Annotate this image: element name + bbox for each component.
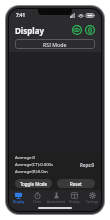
- staticText: Settings: [86, 200, 99, 204]
- button[interactable]: Toggle Mode: [15, 179, 52, 188]
- button[interactable]: Sensor battery: [85, 25, 95, 35]
- staticText: Toggle Mode: [20, 181, 48, 187]
- staticText: Display: [15, 25, 45, 36]
- staticText: Reps:0: [80, 162, 95, 168]
- button[interactable]: History: [65, 190, 83, 205]
- button[interactable]: RSI Mode: [15, 39, 95, 49]
- button[interactable]: Reset: [57, 179, 95, 188]
- staticText: Display: [13, 200, 25, 204]
- staticText: History: [69, 200, 80, 204]
- staticText: Average(R):0.0m: [15, 169, 48, 175]
- button[interactable]: Display: [9, 190, 28, 205]
- staticText: Reset: [70, 181, 82, 187]
- button[interactable]: Timer: [28, 190, 47, 205]
- button[interactable]: Device battery: [72, 25, 82, 35]
- staticText: 7:41: [16, 12, 25, 18]
- staticText: Average(CT):0.000s: [15, 162, 53, 168]
- staticText: Average:0: [15, 155, 35, 161]
- staticText: Timer: [33, 200, 42, 204]
- button[interactable]: Assessment: [47, 190, 65, 205]
- button[interactable]: Settings: [83, 190, 101, 205]
- staticText: RSI Mode: [43, 41, 67, 48]
- staticText: Assessment: [47, 200, 65, 204]
